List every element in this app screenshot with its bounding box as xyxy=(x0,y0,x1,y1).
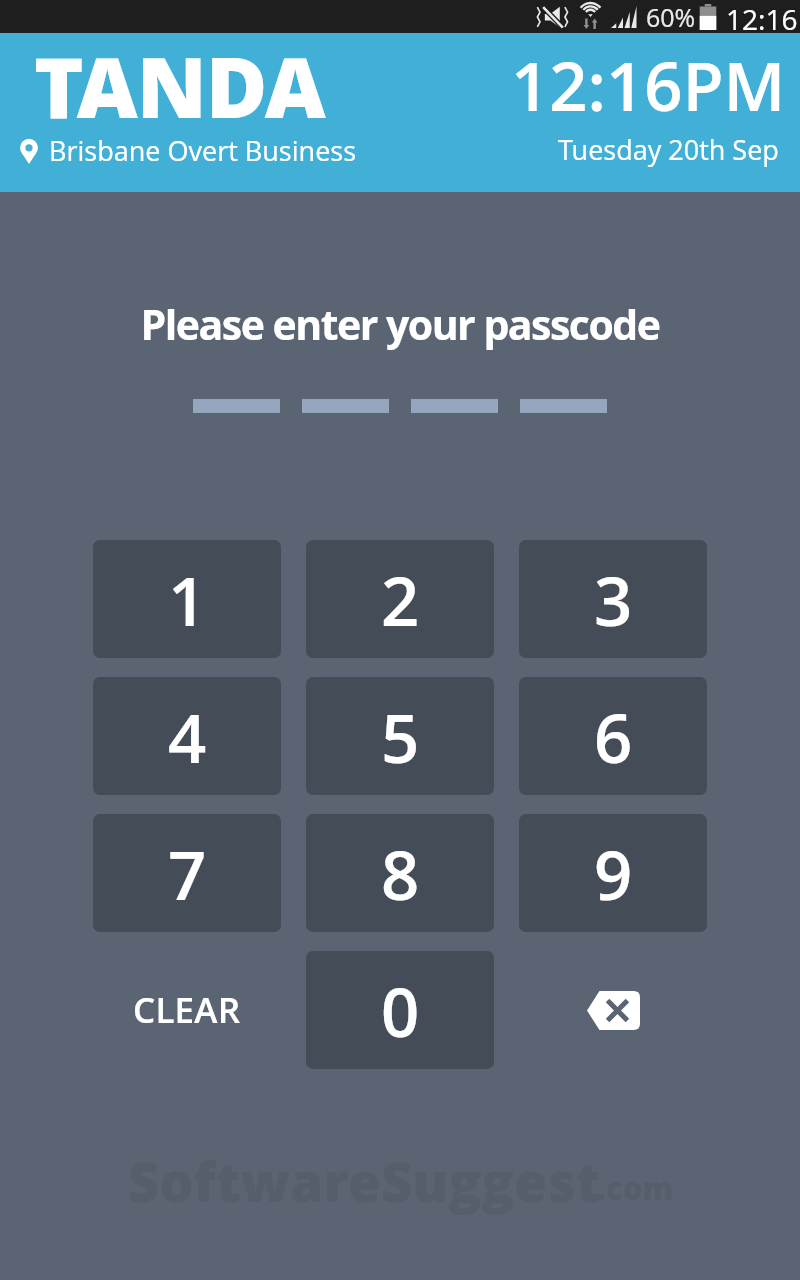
button[interactable]: 4 xyxy=(93,677,281,795)
staticText: 6 xyxy=(594,691,633,782)
staticText: CLEAR xyxy=(133,986,241,1034)
staticText: Please enter your passcode xyxy=(0,296,800,352)
button[interactable]: 7 xyxy=(93,814,281,932)
staticText: Brisbane Overt Business xyxy=(49,132,357,169)
staticText: 12:16PM xyxy=(511,39,786,130)
button[interactable]: 1 xyxy=(93,540,281,658)
button[interactable]: Backspace xyxy=(519,951,707,1069)
button[interactable]: 2 xyxy=(306,540,494,658)
staticText: 4 xyxy=(168,691,207,782)
button[interactable]: 9 xyxy=(519,814,707,932)
button[interactable]: 0 xyxy=(306,951,494,1069)
staticText: Tuesday 20th Sep xyxy=(558,131,779,168)
staticText: 12:16 xyxy=(726,0,798,33)
button[interactable]: 8 xyxy=(306,814,494,932)
staticText: TANDA xyxy=(34,28,325,142)
staticText: 5 xyxy=(381,691,420,782)
staticText: 60% xyxy=(646,0,696,33)
button[interactable]: CLEAR xyxy=(93,951,281,1069)
staticText: 7 xyxy=(168,828,207,919)
staticText: 8 xyxy=(381,828,420,919)
button[interactable]: 6 xyxy=(519,677,707,795)
staticText: 0 xyxy=(381,965,420,1056)
staticText: 1 xyxy=(168,554,207,645)
button[interactable]: 5 xyxy=(306,677,494,795)
staticText: 9 xyxy=(594,828,633,919)
staticText: 3 xyxy=(594,554,633,645)
button[interactable]: 3 xyxy=(519,540,707,658)
staticText: 2 xyxy=(381,554,420,645)
